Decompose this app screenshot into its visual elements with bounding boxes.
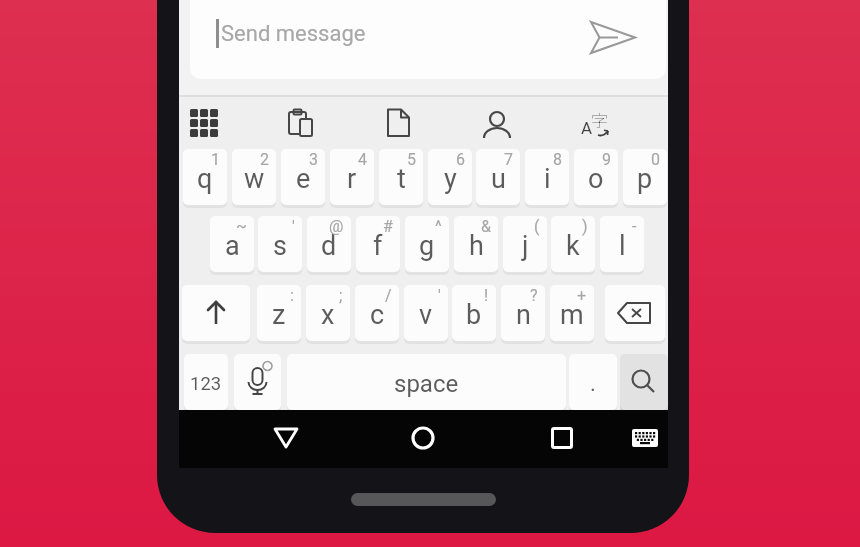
button[interactable]: A xyxy=(581,107,611,139)
staticText: y xyxy=(444,163,457,195)
staticText: e xyxy=(296,163,311,195)
staticText: A xyxy=(581,118,593,138)
button[interactable]: k xyxy=(551,216,595,272)
staticText: m xyxy=(560,299,584,331)
button[interactable] xyxy=(550,426,574,450)
staticText: : xyxy=(290,286,294,305)
staticText: # xyxy=(383,217,393,236)
staticText: s xyxy=(273,230,287,262)
staticText: 7 xyxy=(504,150,513,169)
staticText: z xyxy=(272,299,286,331)
staticText: i xyxy=(544,163,551,195)
staticText: / xyxy=(385,286,392,305)
staticText: t xyxy=(397,163,406,195)
staticText: k xyxy=(566,230,580,262)
staticText: 字 xyxy=(591,107,608,132)
button[interactable]: f xyxy=(356,216,400,272)
button[interactable]: c xyxy=(355,285,399,341)
button[interactable]: y xyxy=(428,149,472,205)
button[interactable] xyxy=(273,426,299,450)
staticText: l xyxy=(619,230,626,262)
button[interactable]: Send message xyxy=(190,0,666,79)
button[interactable]: w xyxy=(232,149,276,205)
staticText: x xyxy=(321,299,335,331)
staticText: v xyxy=(419,299,433,331)
button[interactable] xyxy=(234,354,281,410)
button[interactable]: x xyxy=(306,285,350,341)
button[interactable]: o xyxy=(574,149,618,205)
staticText: ; xyxy=(339,286,343,305)
button[interactable]: a xyxy=(210,216,254,272)
button[interactable] xyxy=(605,285,665,341)
staticText: 6 xyxy=(456,150,465,169)
button[interactable]: e xyxy=(281,149,325,205)
button[interactable] xyxy=(481,108,513,138)
staticText: + xyxy=(577,286,587,305)
staticText: & xyxy=(481,217,491,236)
staticText: 4 xyxy=(358,150,367,169)
staticText: n xyxy=(516,299,531,331)
button[interactable] xyxy=(384,108,414,138)
button[interactable] xyxy=(590,21,636,54)
button[interactable]: u xyxy=(476,149,520,205)
staticText: 2 xyxy=(260,150,269,169)
staticText: 5 xyxy=(407,150,416,169)
button[interactable] xyxy=(620,354,668,410)
button[interactable]: q xyxy=(183,149,227,205)
button[interactable] xyxy=(632,429,658,447)
staticText: ' xyxy=(292,217,295,236)
staticText: 123 xyxy=(190,373,222,395)
button[interactable]: . xyxy=(569,354,617,410)
button[interactable] xyxy=(182,285,250,341)
button[interactable]: l xyxy=(600,216,644,272)
staticText: r xyxy=(347,163,357,195)
button[interactable]: 123 xyxy=(184,354,228,410)
staticText: g xyxy=(419,230,435,262)
button[interactable]: h xyxy=(454,216,498,272)
staticText: h xyxy=(469,230,484,262)
button[interactable]: g xyxy=(405,216,449,272)
staticText: q xyxy=(197,163,213,195)
staticText: space xyxy=(394,370,459,398)
button[interactable]: d xyxy=(307,216,351,272)
button[interactable]: m xyxy=(550,285,594,341)
staticText: a xyxy=(225,230,240,262)
button[interactable]: p xyxy=(623,149,667,205)
button[interactable] xyxy=(286,108,316,138)
staticText: 1 xyxy=(211,150,220,169)
staticText: w xyxy=(244,163,265,195)
staticText: ^ xyxy=(435,217,442,236)
staticText: ( xyxy=(534,217,540,236)
staticText: 0 xyxy=(651,150,660,169)
button[interactable] xyxy=(189,108,219,138)
button[interactable]: i xyxy=(525,149,569,205)
staticText: ! xyxy=(484,286,489,305)
staticText: - xyxy=(632,217,637,236)
button[interactable]: space xyxy=(287,354,566,410)
button[interactable] xyxy=(410,425,436,451)
staticText: ' xyxy=(438,286,441,305)
staticText: ~ xyxy=(236,217,247,236)
staticText: d xyxy=(321,230,337,262)
staticText: c xyxy=(370,299,385,331)
staticText: p xyxy=(637,163,653,195)
staticText: @ xyxy=(329,217,344,236)
button[interactable]: z xyxy=(257,285,301,341)
staticText: u xyxy=(491,163,506,195)
staticText: j xyxy=(522,230,529,262)
button[interactable]: j xyxy=(503,216,547,272)
staticText: o xyxy=(588,163,604,195)
staticText: Send message xyxy=(221,21,366,47)
button[interactable]: v xyxy=(404,285,448,341)
button[interactable]: b xyxy=(452,285,496,341)
staticText: ) xyxy=(582,217,588,236)
button[interactable]: n xyxy=(501,285,545,341)
staticText: b xyxy=(466,299,482,331)
button[interactable]: r xyxy=(330,149,374,205)
staticText: 9 xyxy=(602,150,611,169)
staticText: 8 xyxy=(553,150,562,169)
staticText: ? xyxy=(530,286,538,305)
button[interactable]: t xyxy=(379,149,423,205)
button[interactable]: s xyxy=(258,216,302,272)
staticText: 3 xyxy=(309,150,318,169)
